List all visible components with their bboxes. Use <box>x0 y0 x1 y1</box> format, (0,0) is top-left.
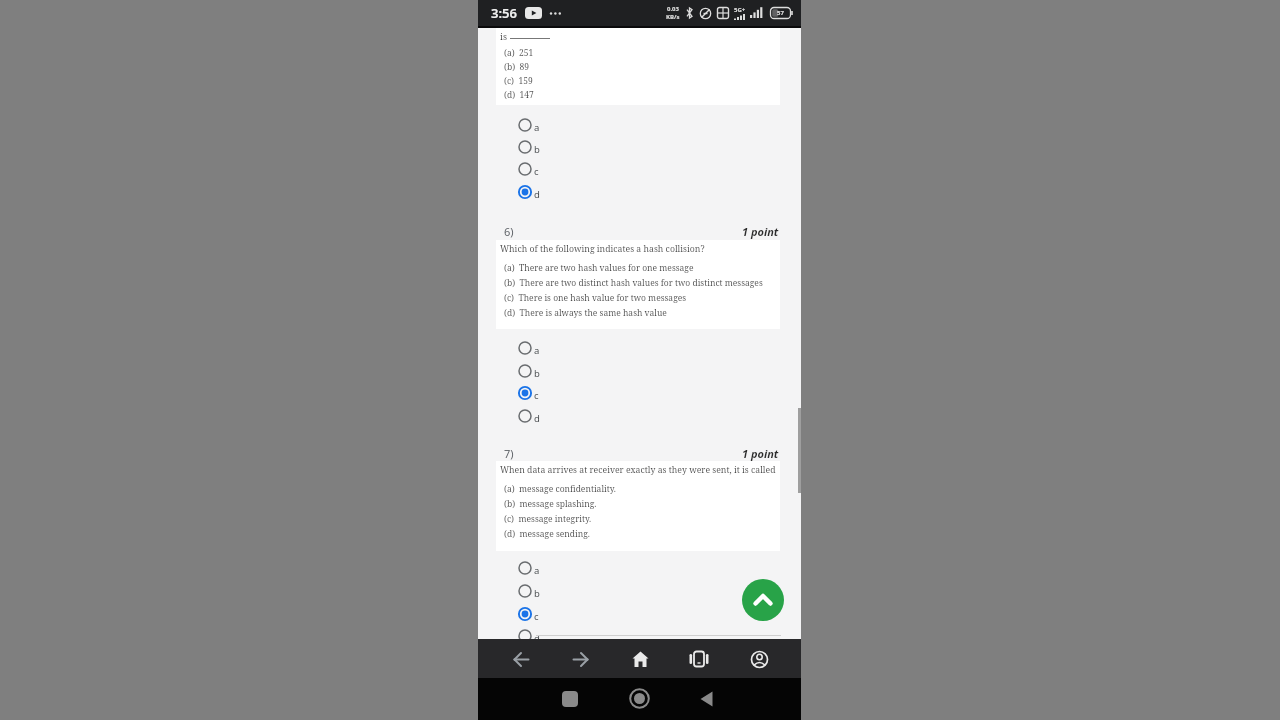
staticText: a <box>534 564 540 577</box>
staticText: (c) There is one hash value for two mess… <box>504 292 687 304</box>
staticText: c <box>534 389 539 402</box>
button[interactable] <box>742 579 784 621</box>
staticText: 3:56 <box>491 4 517 22</box>
staticText: When data arrives at receiver exactly as… <box>500 464 776 476</box>
staticText: (b) message splashing. <box>504 498 597 510</box>
staticText: a <box>534 121 540 134</box>
staticText: (d) 147 <box>504 89 534 101</box>
button[interactable] <box>698 690 716 708</box>
button[interactable]: a <box>534 121 550 135</box>
staticText: a <box>534 344 540 357</box>
button[interactable]: c <box>534 610 550 624</box>
staticText: 0.03 <box>667 5 679 13</box>
staticText: b <box>534 587 540 600</box>
button[interactable] <box>682 642 716 676</box>
staticText: (c) 159 <box>504 75 533 87</box>
button[interactable]: c <box>534 389 550 403</box>
button[interactable]: d <box>534 412 550 426</box>
button[interactable]: b <box>534 367 550 381</box>
staticText: (b) There are two distinct hash values f… <box>504 277 763 289</box>
staticText: 1 point <box>742 446 779 461</box>
staticText: (c) message integrity. <box>504 513 592 525</box>
staticText: b <box>534 367 540 380</box>
staticText: (a) message confidentiality. <box>504 483 616 495</box>
button[interactable] <box>563 642 597 676</box>
staticText: (a) 251 <box>504 47 534 59</box>
staticText: c <box>534 610 539 623</box>
button[interactable]: b <box>534 143 550 157</box>
staticText: b <box>534 143 540 156</box>
staticText: is <box>500 30 510 42</box>
button[interactable] <box>742 642 776 676</box>
button[interactable]: b <box>534 587 550 601</box>
button[interactable] <box>504 642 538 676</box>
staticText: (a) There are two hash values for one me… <box>504 262 694 274</box>
button[interactable] <box>623 642 657 676</box>
staticText: 6) <box>504 224 514 239</box>
staticText: KB/s <box>666 13 680 21</box>
button[interactable]: a <box>534 344 550 358</box>
button[interactable]: a <box>534 564 550 578</box>
button[interactable]: d <box>534 632 550 639</box>
staticText: (d) There is always the same hash value <box>504 307 667 319</box>
staticText: d <box>534 632 540 639</box>
staticText: c <box>534 165 539 178</box>
staticText: Which of the following indicates a hash … <box>500 243 705 255</box>
staticText: 1 point <box>742 224 779 239</box>
staticText: d <box>534 412 540 425</box>
staticText: (b) 89 <box>504 61 530 73</box>
button[interactable]: c <box>534 165 550 179</box>
staticText: (d) message sending. <box>504 528 590 540</box>
staticText: d <box>534 188 540 201</box>
staticText: 7) <box>504 446 514 461</box>
button[interactable] <box>562 691 578 707</box>
staticText: 5G+ <box>734 6 746 14</box>
button[interactable] <box>629 688 650 709</box>
staticText: 57 <box>777 9 784 17</box>
button[interactable]: d <box>534 188 550 202</box>
